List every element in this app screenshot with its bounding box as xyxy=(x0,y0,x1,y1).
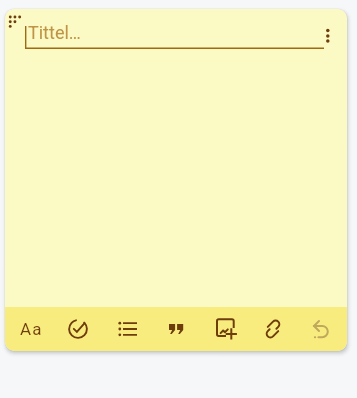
button[interactable]: Tittel… xyxy=(25,24,324,49)
button[interactable]: Text formatting xyxy=(7,307,55,351)
button[interactable]: Insert link xyxy=(249,307,297,351)
button[interactable]: Undo xyxy=(298,307,346,351)
button[interactable]: Insert image xyxy=(203,307,251,351)
button[interactable]: Drag handle xyxy=(7,13,31,37)
button[interactable]: Checklist xyxy=(54,307,102,351)
button[interactable]: Quote xyxy=(152,307,200,351)
staticText: Tittel… xyxy=(28,22,81,43)
staticText: Aa xyxy=(20,319,43,339)
button[interactable]: More options xyxy=(312,19,344,51)
button[interactable]: Bullet list xyxy=(104,307,152,351)
